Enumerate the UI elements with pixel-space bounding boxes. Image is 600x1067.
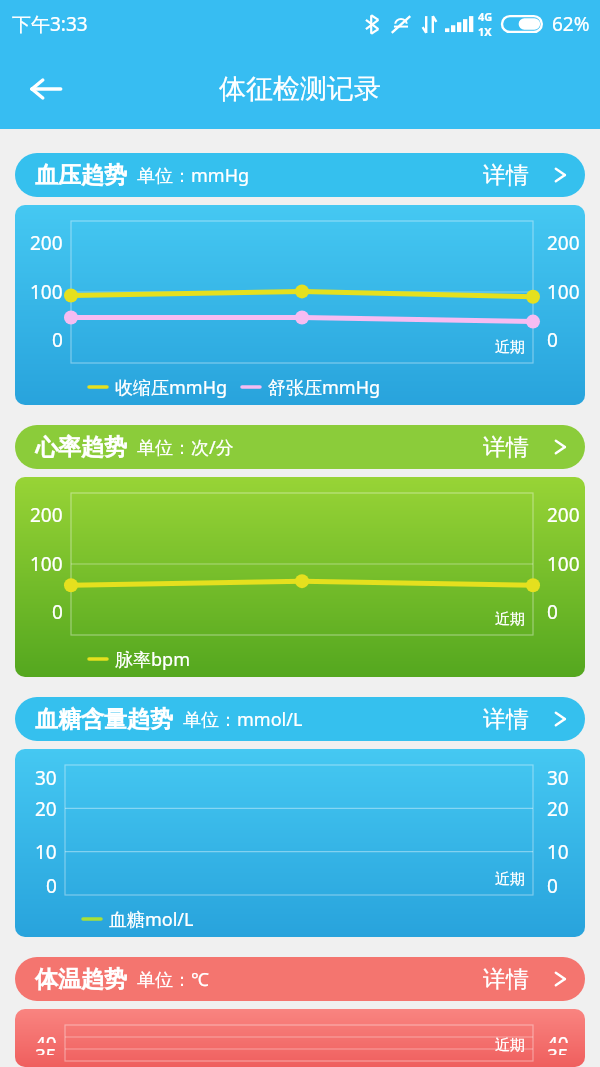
staticText: 单位：次/分 [137,435,234,460]
staticText: 200 [547,230,580,256]
staticText: 40 [35,1031,57,1043]
staticText: 近期 [495,870,525,889]
staticText: 0 [46,873,57,895]
staticText: 0 [547,599,558,625]
button[interactable]: 血压趋势 [15,153,585,197]
staticText: 200 [547,502,580,528]
staticText: 0 [52,327,63,353]
staticText: 血糖含量趋势 [35,705,173,734]
staticText: 详情 [483,161,529,190]
staticText: 30 [547,765,569,787]
staticText: 体温趋势 [35,965,127,994]
staticText: 收缩压mmHg [115,375,228,400]
staticText: 下午3:33 [12,11,88,37]
staticText: 单位：mmol/L [183,707,303,732]
button[interactable]: 体温趋势 [15,957,585,1001]
staticText: 62% [552,11,590,37]
staticText: 40 [547,1031,569,1043]
staticText: 10 [35,839,57,865]
staticText: 近期 [495,338,525,357]
staticText: 20 [35,796,57,822]
staticText: 详情 [483,965,529,994]
staticText: 0 [52,599,63,625]
staticText: 30 [35,765,57,787]
staticText: 35 [35,1043,57,1055]
button[interactable]: 心率趋势 [15,425,585,469]
staticText: 100 [547,551,580,577]
staticText: 20 [547,796,569,822]
button[interactable]: 血糖含量趋势 [15,697,585,741]
button[interactable]: 200 [15,205,585,405]
staticText: 100 [30,551,63,577]
button[interactable]: 45 [15,1009,585,1067]
staticText: 心率趋势 [35,433,127,462]
staticText: 4G [478,9,493,24]
staticText: 10 [547,839,569,865]
staticText: 详情 [483,433,529,462]
staticText: 近期 [495,610,525,629]
staticText: 血压趋势 [35,161,127,190]
button[interactable]: Back [18,61,74,117]
staticText: 近期 [495,1036,525,1055]
staticText: 体征检测记录 [219,72,381,106]
staticText: 1X [478,24,492,39]
staticText: 舒张压mmHg [268,375,381,400]
staticText: 35 [547,1043,569,1055]
staticText: 200 [30,230,63,256]
staticText: 单位：℃ [137,967,209,992]
button[interactable]: 200 [15,477,585,677]
staticText: 100 [30,279,63,305]
staticText: 100 [547,279,580,305]
staticText: 详情 [483,705,529,734]
staticText: 200 [30,502,63,528]
staticText: 0 [547,873,558,895]
staticText: 脉率bpm [115,647,190,672]
staticText: 血糖mol/L [109,907,194,932]
staticText: 单位：mmHg [137,163,250,188]
staticText: 0 [547,327,558,353]
button[interactable]: 30 [15,749,585,937]
